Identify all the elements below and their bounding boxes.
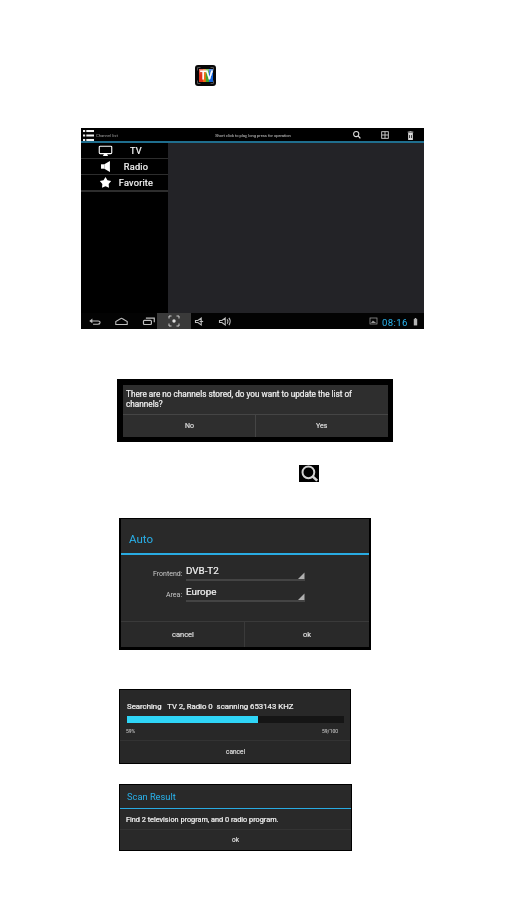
button[interactable]: cancel <box>121 622 244 647</box>
staticText: cancel <box>172 630 194 639</box>
button[interactable]: Recents <box>140 313 157 329</box>
button[interactable]: Menu <box>83 130 94 141</box>
staticText: Find 2 television program, and 0 radio p… <box>126 815 279 824</box>
staticText: cancel <box>226 748 245 756</box>
button[interactable]: Delete <box>405 130 415 140</box>
button[interactable]: Screenshot <box>157 313 191 329</box>
staticText: Radio <box>116 161 156 172</box>
staticText: Searching TV 2, Radio 0 scanning 653143 … <box>127 702 294 711</box>
staticText: Frontend: <box>153 570 183 578</box>
button[interactable]: TV <box>81 143 168 158</box>
staticText: DVB-T2 <box>186 565 219 576</box>
button[interactable]: Radio <box>81 159 168 174</box>
button[interactable]: Back <box>86 313 103 329</box>
staticText: Channel list <box>96 133 118 138</box>
button[interactable]: Home <box>113 313 130 329</box>
button[interactable]: No <box>123 415 255 437</box>
staticText: Short click to play, long press for oper… <box>215 133 291 138</box>
button[interactable]: Search <box>352 130 362 140</box>
button[interactable]: Europe <box>186 586 305 604</box>
staticText: There are no channels stored, do you wan… <box>126 389 385 409</box>
button[interactable]: DVB-T2 <box>186 565 305 583</box>
staticText: Europe <box>186 586 217 597</box>
button[interactable]: ok <box>120 830 351 850</box>
staticText: 59/100 <box>322 728 339 734</box>
button[interactable]: cancel <box>120 741 350 763</box>
staticText: No <box>185 422 194 430</box>
staticText: Favorite <box>116 177 156 188</box>
button[interactable]: Volume down <box>192 313 209 329</box>
staticText: Area: <box>166 591 183 599</box>
button[interactable]: Favorite <box>81 175 168 190</box>
button[interactable]: TV app <box>195 65 216 86</box>
button[interactable]: Grid view <box>380 130 390 140</box>
staticText: ok <box>303 630 312 639</box>
staticText: ok <box>232 836 240 844</box>
button[interactable]: Search <box>299 465 319 482</box>
staticText: TV <box>200 70 213 82</box>
button[interactable]: ok <box>245 622 369 647</box>
staticText: Auto <box>129 532 153 545</box>
button[interactable]: Yes <box>256 415 388 437</box>
staticText: 08:16 <box>382 317 408 328</box>
staticText: Scan Result <box>127 791 176 802</box>
button[interactable]: Volume up <box>216 313 233 329</box>
staticText: Yes <box>316 422 328 430</box>
staticText: 59% <box>126 728 136 734</box>
staticText: TV <box>116 145 156 156</box>
